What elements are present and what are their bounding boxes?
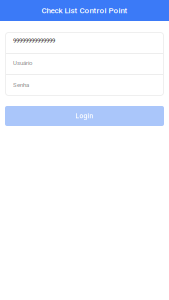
staticText: Senha: [13, 81, 29, 88]
staticText: Login: [75, 112, 93, 120]
staticText: 99999999999999: [13, 37, 55, 44]
button[interactable]: 99999999999999: [5, 32, 164, 53]
button[interactable]: Senha: [5, 75, 164, 96]
button[interactable]: Usuário: [5, 54, 164, 74]
staticText: Check List Control Point: [41, 6, 127, 15]
button[interactable]: Login: [0, 106, 169, 126]
staticText: Usuário: [13, 59, 32, 66]
